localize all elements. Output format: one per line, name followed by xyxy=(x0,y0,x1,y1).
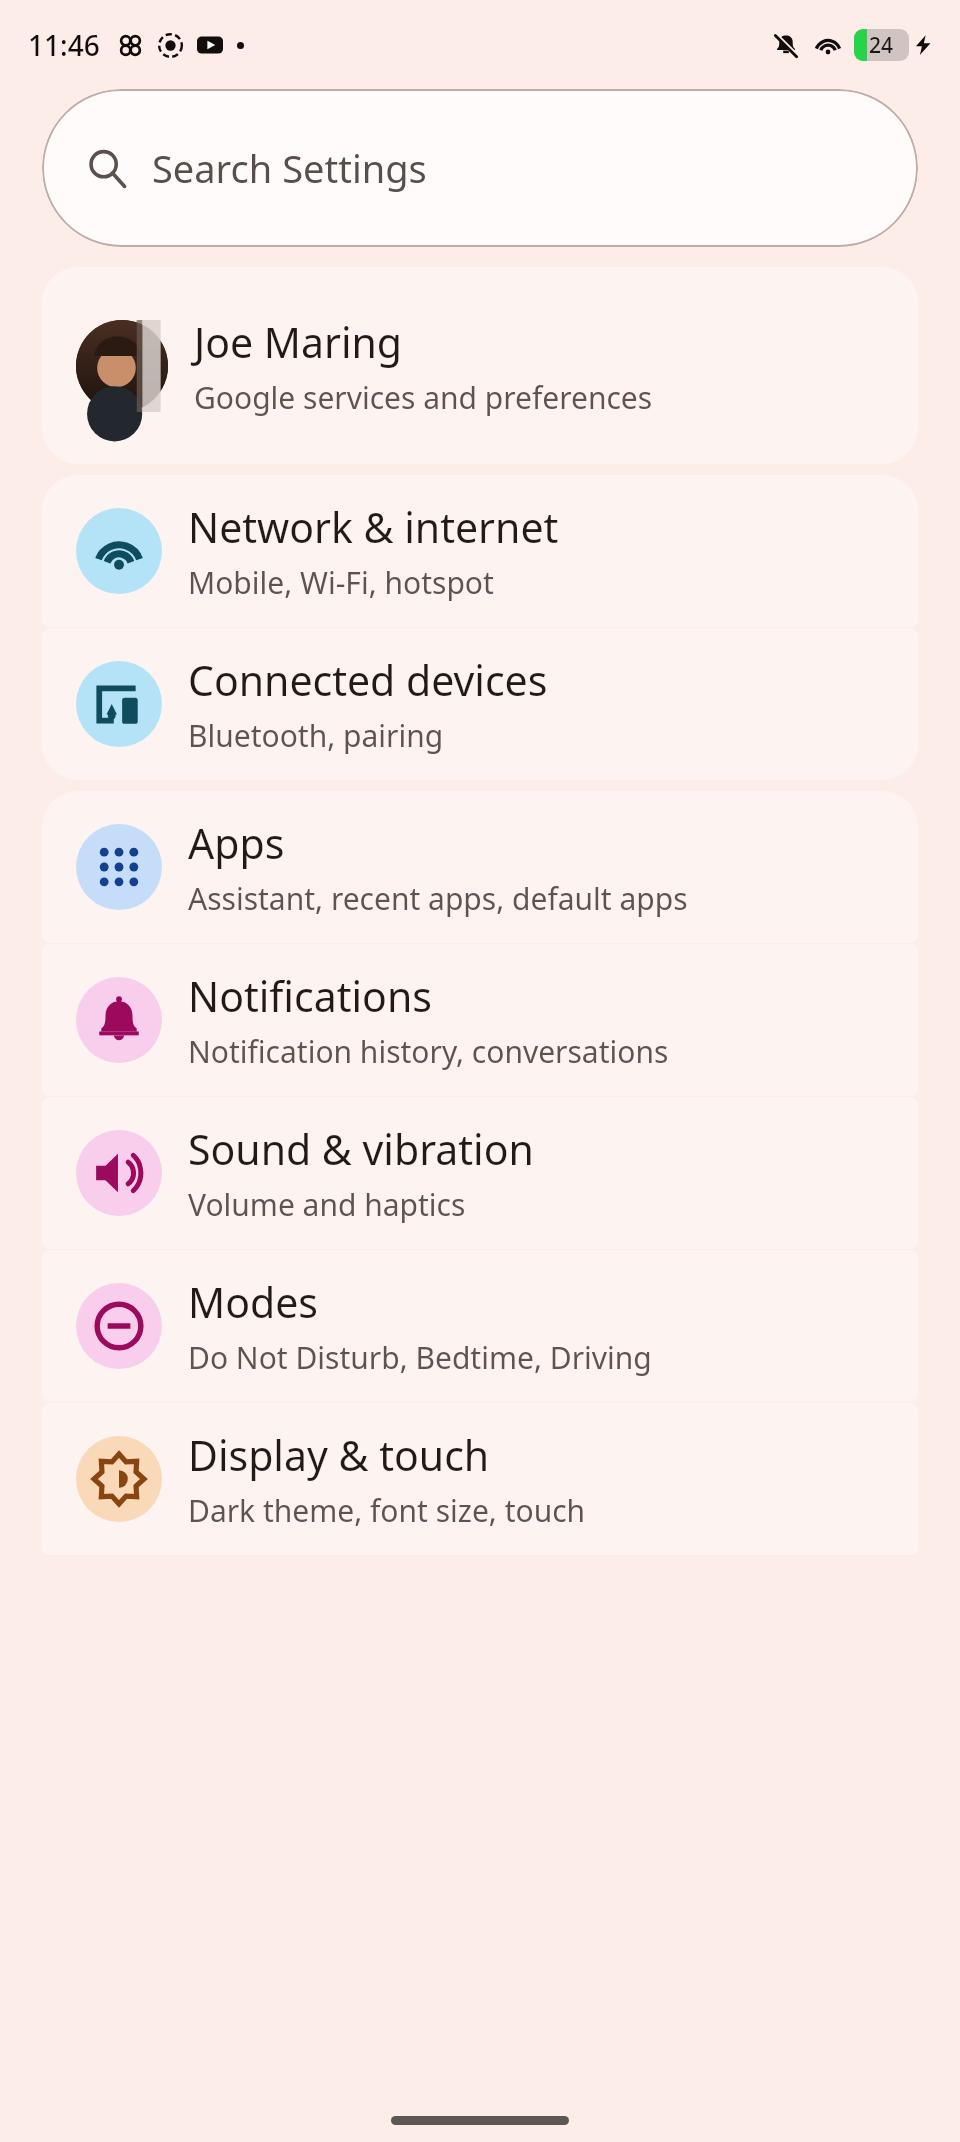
staticText: Mobile, Wi-Fi, hotspot xyxy=(188,562,494,603)
button[interactable]: Joe Maring xyxy=(42,267,918,464)
button[interactable]: Sound & vibration xyxy=(42,1097,918,1249)
staticText: Dark theme, font size, touch xyxy=(188,1490,586,1531)
staticText: Google services and preferences xyxy=(194,377,653,418)
staticText: Joe Maring xyxy=(194,314,403,370)
staticText: Network & internet xyxy=(188,499,559,555)
staticText: Notification history, conversations xyxy=(188,1031,669,1072)
staticText: Do Not Disturb, Bedtime, Driving xyxy=(188,1337,652,1378)
button[interactable]: Connected devices xyxy=(42,628,918,780)
staticText: 11:46 xyxy=(28,26,100,64)
staticText: Sound & vibration xyxy=(188,1121,534,1177)
button[interactable]: Network & internet xyxy=(42,475,918,627)
staticText: Notifications xyxy=(188,968,432,1024)
staticText: Apps xyxy=(188,815,285,871)
staticText: Volume and haptics xyxy=(188,1184,466,1225)
button[interactable]: Display & touch xyxy=(42,1403,918,1555)
staticText: Modes xyxy=(188,1274,318,1330)
staticText: Bluetooth, pairing xyxy=(188,715,444,756)
staticText: Connected devices xyxy=(188,652,548,708)
button[interactable]: Apps xyxy=(42,791,918,943)
staticText: 24 xyxy=(869,31,894,60)
button[interactable]: Notifications xyxy=(42,944,918,1096)
button[interactable]: Search Settings xyxy=(42,89,918,247)
staticText: Display & touch xyxy=(188,1427,490,1483)
button[interactable]: Modes xyxy=(42,1250,918,1402)
staticText: Assistant, recent apps, default apps xyxy=(188,878,688,919)
staticText: Search Settings xyxy=(152,142,427,194)
